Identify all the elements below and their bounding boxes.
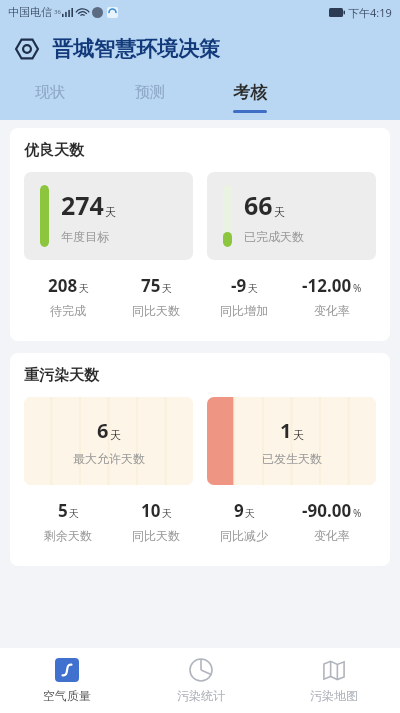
staticText: 天 bbox=[245, 507, 255, 520]
staticText: 天 bbox=[69, 507, 79, 520]
staticText: 变化率 bbox=[314, 303, 350, 318]
button[interactable]: 空气质量 bbox=[0, 648, 134, 713]
staticText: 剩余天数 bbox=[44, 528, 92, 543]
staticText: 同比增加 bbox=[220, 303, 268, 318]
staticText: -90.00 bbox=[302, 499, 352, 522]
staticText: -9 bbox=[231, 274, 247, 297]
button[interactable]: -12.00 bbox=[288, 274, 376, 318]
staticText: 年度目标 bbox=[61, 229, 109, 244]
staticText: 待完成 bbox=[50, 303, 86, 318]
staticText: 最大允许天数 bbox=[73, 451, 145, 466]
staticText: 污染地图 bbox=[310, 688, 358, 703]
staticText: 274 bbox=[61, 188, 104, 222]
staticText: % bbox=[353, 506, 362, 520]
staticText: 5 bbox=[58, 499, 68, 522]
staticText: 天 bbox=[162, 282, 172, 295]
button[interactable]: -90.00 bbox=[288, 499, 376, 543]
button[interactable]: 10 bbox=[112, 499, 200, 543]
staticText: 天 bbox=[162, 507, 172, 520]
staticText: % bbox=[353, 281, 362, 295]
button[interactable]: 208 bbox=[24, 274, 112, 318]
staticText: 同比减少 bbox=[220, 528, 268, 543]
staticText: 已完成天数 bbox=[244, 229, 304, 244]
staticText: 75 bbox=[141, 274, 161, 297]
button[interactable]: 66 bbox=[207, 172, 376, 260]
staticText: 1 bbox=[280, 417, 292, 444]
staticText: 考核 bbox=[233, 82, 267, 103]
button[interactable]: 1 bbox=[207, 397, 376, 485]
staticText: 天 bbox=[79, 282, 89, 295]
staticText: 同比天数 bbox=[132, 303, 180, 318]
button[interactable]: 污染地图 bbox=[267, 648, 400, 713]
other: Logo bbox=[14, 36, 40, 62]
button[interactable]: 现状 bbox=[0, 74, 100, 120]
staticText: -12.00 bbox=[302, 274, 352, 297]
button[interactable]: 75 bbox=[112, 274, 200, 318]
staticText: 天 bbox=[110, 428, 121, 442]
staticText: 污染统计 bbox=[177, 688, 225, 703]
button[interactable]: 274 bbox=[24, 172, 193, 260]
staticText: 66 bbox=[244, 188, 273, 222]
staticText: 已发生天数 bbox=[262, 451, 322, 466]
staticText: 208 bbox=[48, 274, 78, 297]
button[interactable]: -9 bbox=[200, 274, 288, 318]
staticText: 优良天数 bbox=[24, 141, 84, 160]
button[interactable]: 污染统计 bbox=[134, 648, 267, 713]
staticText: 现状 bbox=[35, 83, 65, 102]
button[interactable]: 预测 bbox=[100, 74, 200, 120]
staticText: 10 bbox=[141, 499, 161, 522]
staticText: 空气质量 bbox=[43, 688, 91, 703]
staticText: 天 bbox=[274, 205, 285, 219]
button[interactable]: 9 bbox=[200, 499, 288, 543]
staticText: 晋城智慧环境决策 bbox=[52, 36, 220, 62]
staticText: 中国电信 bbox=[8, 5, 52, 19]
staticText: 变化率 bbox=[314, 528, 350, 543]
staticText: 预测 bbox=[135, 83, 165, 102]
button[interactable]: 考核 bbox=[200, 74, 300, 120]
staticText: 同比天数 bbox=[132, 528, 180, 543]
staticText: 重污染天数 bbox=[24, 366, 99, 385]
button[interactable]: 6 bbox=[24, 397, 193, 485]
staticText: 9 bbox=[234, 499, 244, 522]
staticText: 36 bbox=[54, 8, 61, 16]
staticText: 天 bbox=[248, 282, 258, 295]
staticText: 天 bbox=[105, 205, 116, 219]
staticText: 6 bbox=[97, 417, 109, 444]
staticText: 天 bbox=[293, 428, 304, 442]
button[interactable]: 5 bbox=[24, 499, 112, 543]
staticText: 下午4:19 bbox=[348, 5, 392, 20]
